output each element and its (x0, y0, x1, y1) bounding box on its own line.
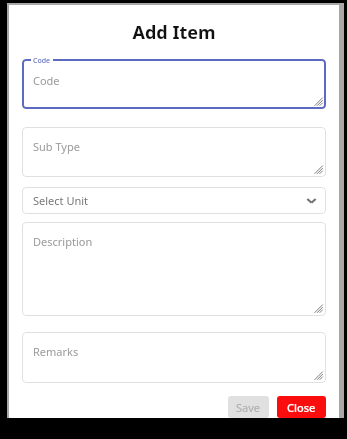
button[interactable]: Sub Type (22, 127, 326, 177)
button[interactable]: Save (228, 396, 269, 418)
button[interactable]: Description (22, 222, 326, 316)
staticText: Add Item (9, 20, 339, 45)
staticText: Code (33, 73, 60, 88)
button[interactable]: Remarks (22, 332, 326, 383)
other: Open unit dropdown (306, 195, 317, 206)
staticText: Close (287, 400, 316, 415)
staticText: Save (236, 400, 261, 415)
button[interactable]: Select Unit (22, 187, 326, 214)
staticText: Description (33, 234, 93, 249)
staticText: Sub Type (33, 139, 80, 154)
staticText: Remarks (33, 344, 79, 359)
button[interactable]: Code (22, 59, 326, 109)
staticText: Code (33, 56, 51, 66)
button[interactable]: Close (277, 396, 326, 418)
staticText: Select Unit (33, 193, 89, 208)
